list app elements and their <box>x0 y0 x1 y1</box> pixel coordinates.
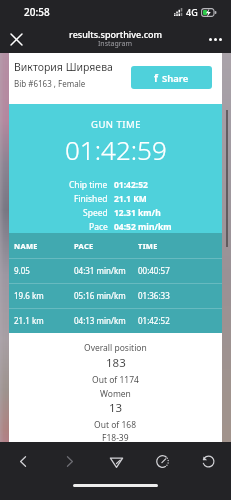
staticText: 21.1 KM <box>114 193 147 205</box>
staticText: 4G <box>186 6 198 18</box>
staticText: 19.6 km <box>14 290 44 301</box>
staticText: f <box>154 71 158 85</box>
staticText: Share <box>162 72 189 85</box>
button[interactable]: 21.1 km <box>9 308 222 333</box>
staticText: 01:42:59 <box>65 132 167 167</box>
staticText: GUN TIME <box>91 118 141 131</box>
button[interactable]: 9.05 <box>9 258 222 283</box>
staticText: Finished <box>74 193 108 205</box>
staticText: 00:40:57 <box>138 265 170 276</box>
button[interactable]: Speed <box>146 445 178 477</box>
staticText: 9.05 <box>14 265 30 276</box>
staticText: Overall position <box>84 342 147 354</box>
staticText: Women <box>100 388 131 400</box>
staticText: 183 <box>106 355 126 371</box>
staticText: 20:58 <box>24 5 50 19</box>
staticText: PACE <box>74 241 94 251</box>
staticText: TIME <box>138 241 158 251</box>
staticText: Out of 168 <box>94 419 137 431</box>
button[interactable]: f <box>131 66 212 89</box>
staticText: Out of 1174 <box>92 374 139 386</box>
staticText: Chip time <box>69 179 108 191</box>
staticText: Instagram <box>98 39 133 49</box>
button[interactable]: Back <box>7 445 39 477</box>
staticText: F18-39 <box>102 432 129 442</box>
staticText: 04:31 min/km <box>74 265 126 276</box>
staticText: 04:13 min/km <box>74 315 126 326</box>
button[interactable]: Close <box>0 25 32 53</box>
staticText: 01:42:52 <box>138 315 170 326</box>
staticText: Speed <box>83 207 108 219</box>
staticText: NAME <box>14 241 38 251</box>
staticText: Виктория Ширяева <box>14 60 113 74</box>
staticText: Pace <box>89 221 108 233</box>
button[interactable]: Share <box>100 445 132 477</box>
staticText: results.sporthive.com <box>69 28 163 40</box>
staticText: 12.31 km/h <box>114 207 161 219</box>
staticText: 05:16 min/km <box>74 290 126 301</box>
staticText: Bib #6163 , Female <box>14 78 86 89</box>
staticText: 04:52 min/km <box>114 221 172 233</box>
staticText: 01:36:33 <box>138 290 170 301</box>
button[interactable]: Reload <box>192 445 224 477</box>
staticText: 01:42:52 <box>114 179 148 191</box>
button[interactable]: 19.6 km <box>9 283 222 308</box>
staticText: 13 <box>109 400 123 416</box>
button[interactable]: Forward <box>53 445 85 477</box>
button[interactable]: More options <box>199 25 231 53</box>
staticText: 21.1 km <box>14 315 44 326</box>
